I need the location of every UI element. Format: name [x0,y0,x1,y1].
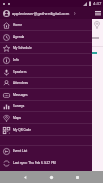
staticText: Last sync: Thu Feb 6 3:27 PM [13,161,56,165]
staticText: appleviewer@gatherdigital.com [12,11,70,16]
staticText: Surveys [13,104,25,108]
staticText: Messages [13,93,28,97]
button[interactable]: Agenda [0,31,92,43]
staticText: Info [13,58,19,62]
staticText: Home [13,23,22,27]
button[interactable]: Attendees [0,77,92,89]
staticText: Maps [13,116,22,120]
staticText: Agenda [13,35,25,39]
button[interactable]: Last sync: Thu Feb 6 3:27 PM [0,157,92,169]
button[interactable]: Home [46,172,57,183]
button[interactable]: Home [0,19,92,31]
button[interactable]: My Schedule [0,42,92,54]
button[interactable]: Event List [0,145,92,157]
button[interactable]: Open navigation menu [95,10,101,16]
button[interactable]: Back [20,172,31,183]
button[interactable]: My QR Code [0,124,92,136]
button[interactable]: Recent apps [72,172,83,183]
staticText: Speakers [13,70,27,74]
button[interactable]: Messages [0,89,92,101]
button[interactable]: Info [0,54,92,66]
button[interactable]: Surveys [0,100,92,112]
staticText: 4:37 [93,1,102,7]
button[interactable]: Maps [0,112,92,124]
button[interactable]: appleviewer@gatherdigital.com [0,7,92,19]
staticText: Attendees [13,81,28,85]
button[interactable]: Speakers [0,66,92,78]
staticText: Event List [13,149,28,153]
staticText: My QR Code [13,128,32,132]
staticText: My Schedule [13,46,32,50]
